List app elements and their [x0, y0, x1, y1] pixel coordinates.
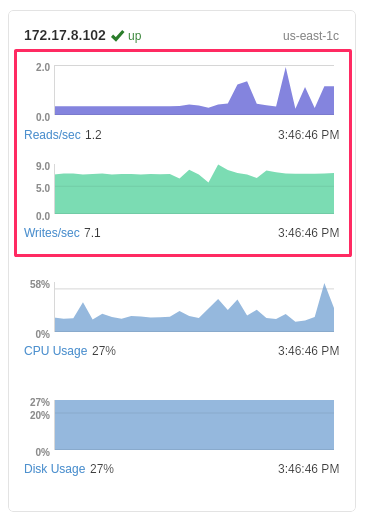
button[interactable]	[14, 49, 352, 257]
button[interactable]: Disk Usage	[24, 462, 86, 475]
staticText: 3:46:46 PM	[278, 462, 340, 475]
staticText: 0%	[8, 329, 50, 340]
staticText: 2.0	[8, 62, 50, 73]
button[interactable]: Writes/sec	[24, 226, 80, 239]
staticText: 20%	[8, 410, 50, 421]
staticText: 5.0	[8, 183, 50, 194]
staticText: 172.17.8.102	[24, 27, 106, 43]
staticText: up	[128, 29, 142, 42]
staticText: us-east-1c	[283, 29, 340, 42]
other: Status up	[111, 29, 124, 42]
staticText: 1.2	[85, 128, 102, 141]
staticText: 3:46:46 PM	[278, 128, 340, 141]
staticText: 3:46:46 PM	[278, 226, 340, 239]
staticText: Reads/sec	[24, 128, 81, 141]
staticText: 27%	[92, 344, 117, 357]
staticText: Disk Usage	[24, 462, 86, 475]
staticText: 27%	[8, 397, 50, 408]
staticText: 0%	[8, 447, 50, 458]
staticText: 0.0	[8, 211, 50, 222]
staticText: Writes/sec	[24, 226, 80, 239]
button[interactable]: CPU Usage	[24, 344, 88, 357]
staticText: 58%	[8, 279, 50, 290]
staticText: 9.0	[8, 161, 50, 172]
staticText: 7.1	[84, 226, 101, 239]
staticText: 3:46:46 PM	[278, 344, 340, 357]
staticText: 0.0	[8, 112, 50, 123]
staticText: CPU Usage	[24, 344, 88, 357]
staticText: 27%	[90, 462, 115, 475]
button[interactable]: Reads/sec	[24, 128, 81, 141]
